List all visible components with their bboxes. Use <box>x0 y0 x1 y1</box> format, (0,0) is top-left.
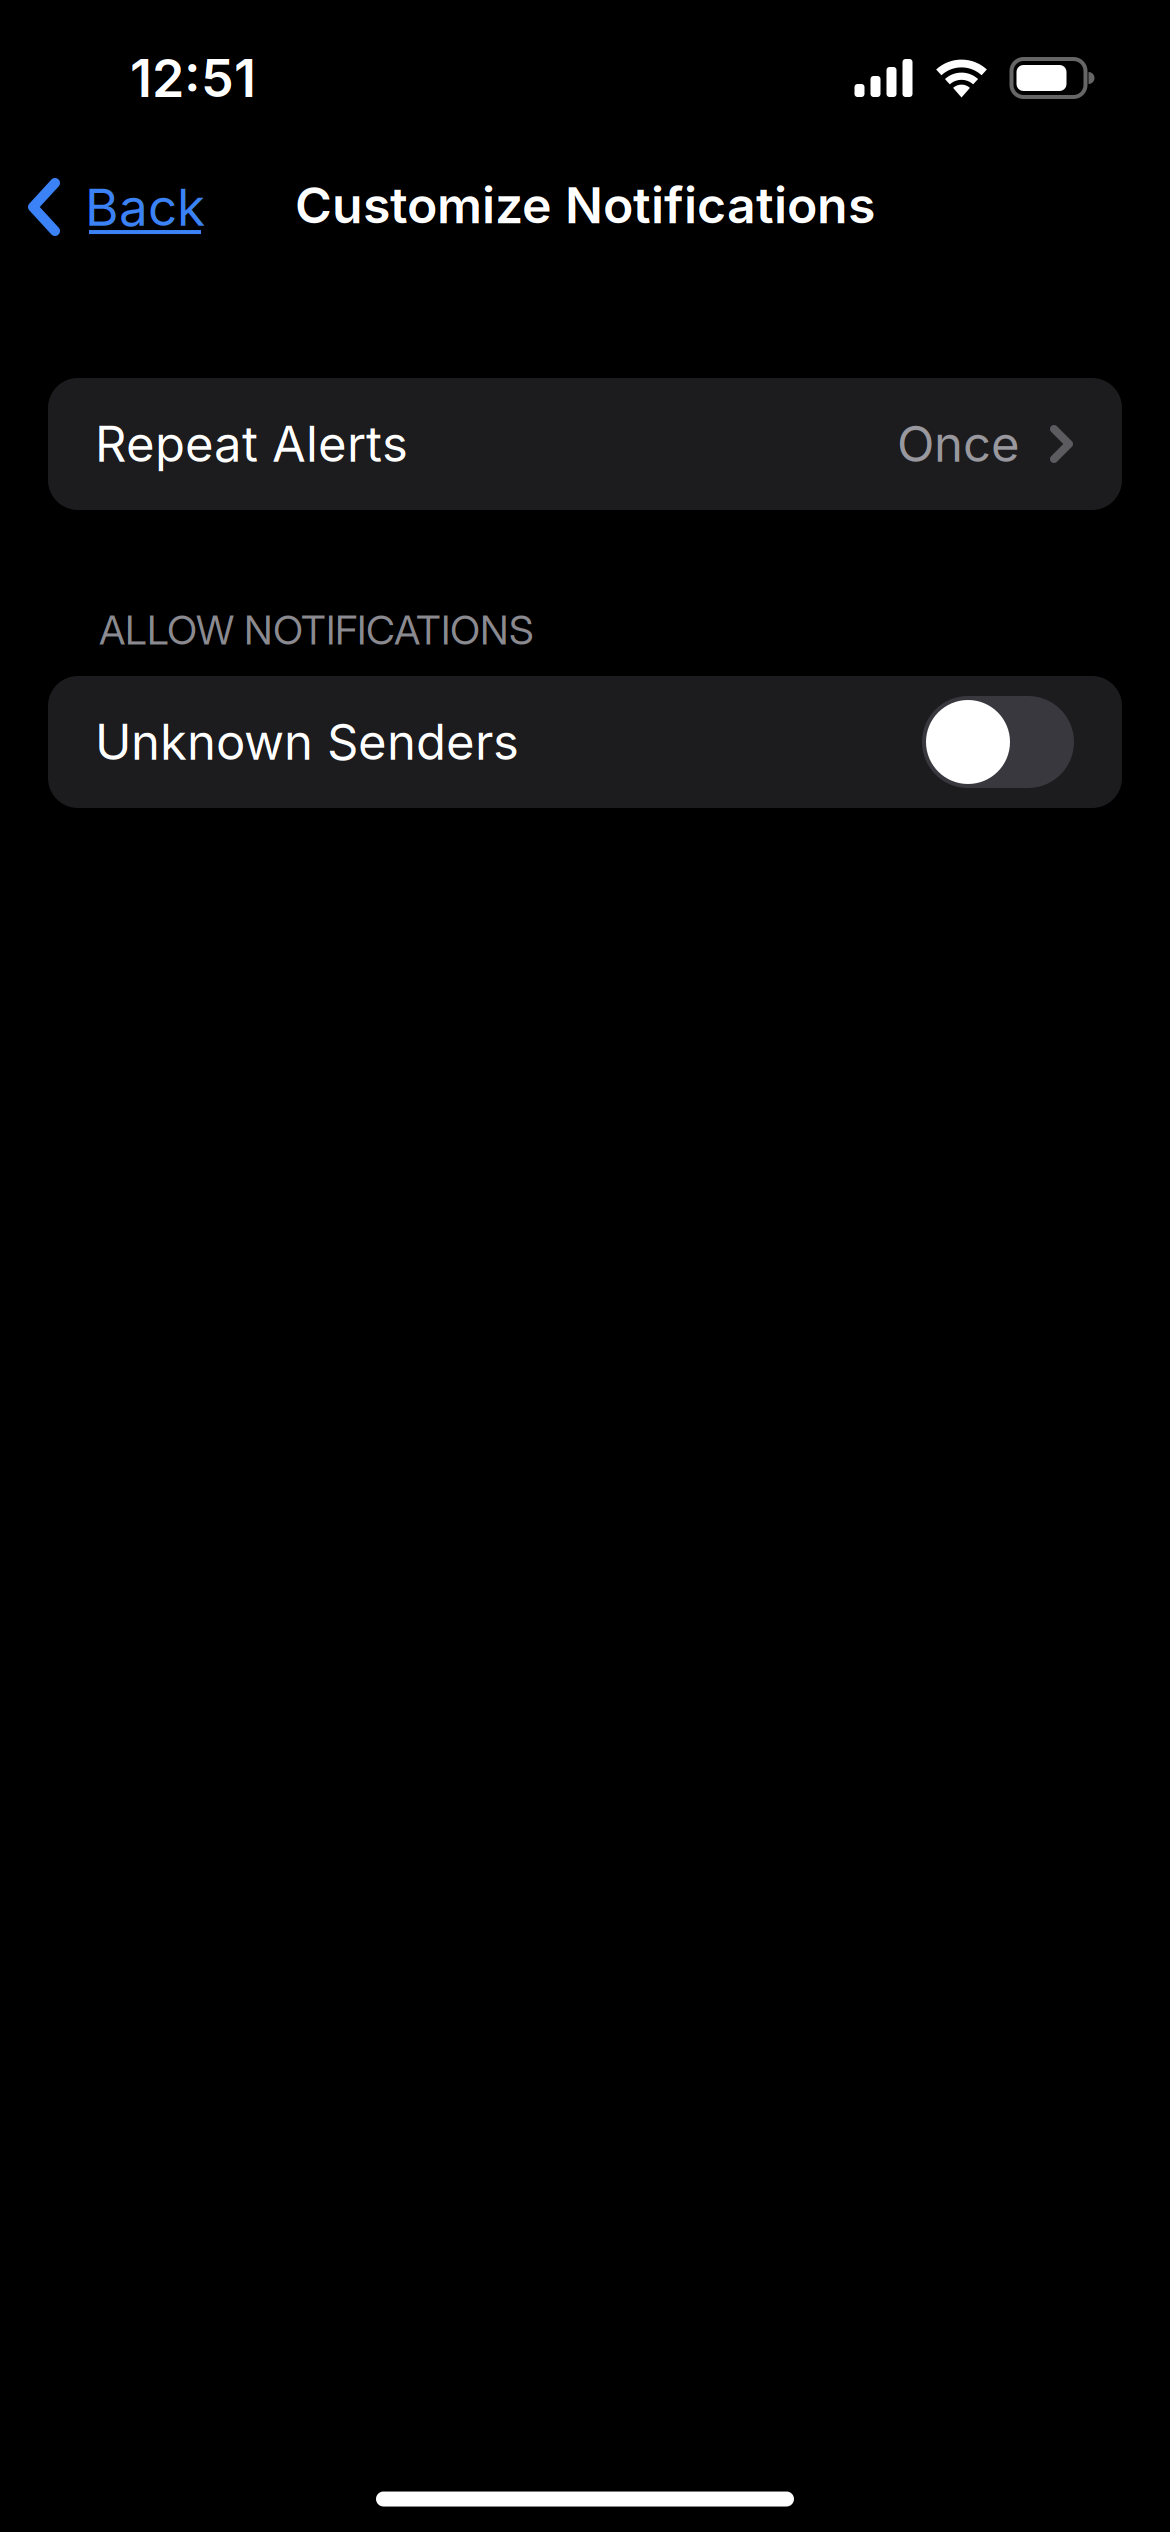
staticText: Back <box>85 176 205 238</box>
staticText: ALLOW NOTIFICATIONS <box>99 606 534 654</box>
staticText: Unknown Senders <box>95 712 519 772</box>
staticText: Repeat Alerts <box>95 414 408 474</box>
button[interactable]: Back <box>0 151 232 267</box>
staticText: Once <box>897 414 1020 474</box>
button[interactable]: Repeat Alerts <box>48 378 1122 510</box>
button[interactable]: Unknown Senders <box>48 676 1122 808</box>
staticText: Customize Notifications <box>295 175 875 235</box>
staticText: 12:51 <box>130 46 256 109</box>
